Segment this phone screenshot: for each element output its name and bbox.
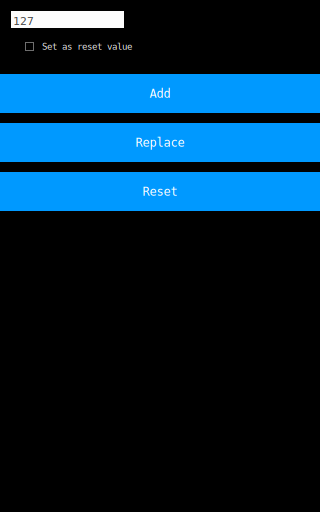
staticText: Reset bbox=[142, 184, 177, 198]
staticText: 127 bbox=[13, 14, 34, 28]
button[interactable]: Add bbox=[0, 74, 320, 113]
button[interactable]: Reset bbox=[0, 172, 320, 211]
button[interactable]: Set as reset value bbox=[0, 38, 320, 55]
button[interactable]: Value, 127 bbox=[11, 11, 124, 28]
staticText: Set as reset value bbox=[42, 41, 132, 52]
staticText: Add bbox=[149, 86, 170, 100]
staticText: Replace bbox=[135, 135, 184, 149]
button[interactable]: Replace bbox=[0, 123, 320, 162]
